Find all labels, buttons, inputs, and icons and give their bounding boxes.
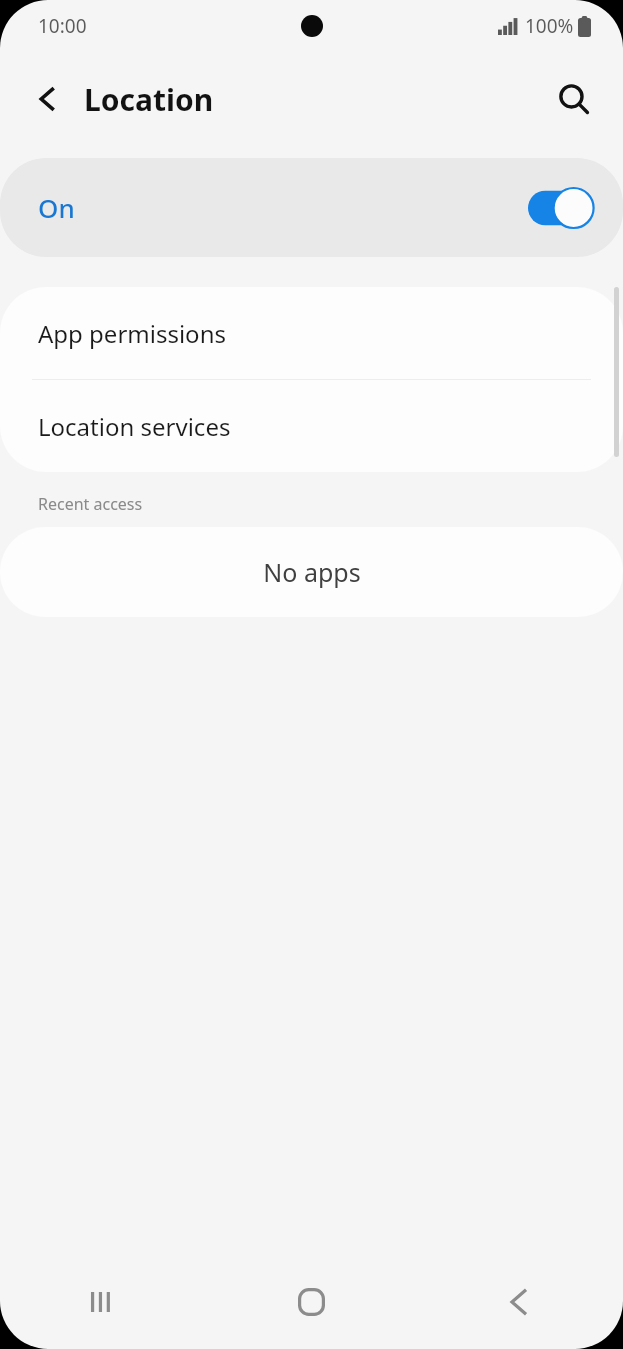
staticText: App permissions — [38, 317, 226, 350]
staticText: 100% — [525, 13, 574, 39]
button[interactable]: Back — [22, 73, 74, 125]
staticText: On — [38, 190, 75, 225]
staticText: Recent access — [38, 493, 143, 515]
button[interactable]: Recent apps — [0, 1254, 207, 1349]
button[interactable]: On — [0, 158, 623, 257]
button[interactable]: Back — [415, 1254, 623, 1349]
staticText: 10:00 — [38, 13, 87, 39]
button[interactable]: Location services — [0, 380, 623, 472]
staticText: No apps — [263, 555, 361, 589]
button[interactable]: Home — [207, 1254, 415, 1349]
staticText: Location services — [38, 410, 231, 443]
button[interactable]: App permissions — [0, 287, 623, 379]
staticText: Location — [84, 79, 214, 120]
button[interactable]: Search — [547, 72, 601, 126]
